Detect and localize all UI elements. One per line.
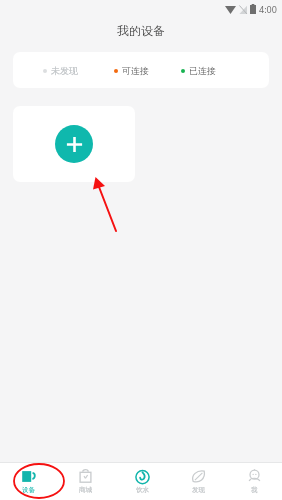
button[interactable]: 设备 bbox=[0, 463, 57, 500]
button[interactable]: 发现 bbox=[170, 463, 226, 500]
staticText: 未发现 bbox=[51, 65, 78, 76]
staticText: 4:00 bbox=[259, 3, 277, 15]
staticText: 可连接 bbox=[122, 65, 149, 76]
button[interactable]: 未发现 bbox=[13, 52, 269, 88]
staticText: 已连接 bbox=[189, 65, 216, 76]
button[interactable]: 商城 bbox=[57, 463, 114, 500]
staticText: 商城 bbox=[79, 486, 92, 494]
button[interactable]: 饮水 bbox=[114, 463, 170, 500]
button[interactable]: 我 bbox=[226, 463, 282, 500]
staticText: 饮水 bbox=[136, 486, 149, 494]
staticText: 发现 bbox=[192, 486, 205, 494]
staticText: 设备 bbox=[22, 486, 35, 494]
button[interactable]: 添加设备 bbox=[13, 106, 135, 182]
staticText: 我的设备 bbox=[117, 23, 165, 38]
staticText: 我 bbox=[251, 486, 258, 494]
